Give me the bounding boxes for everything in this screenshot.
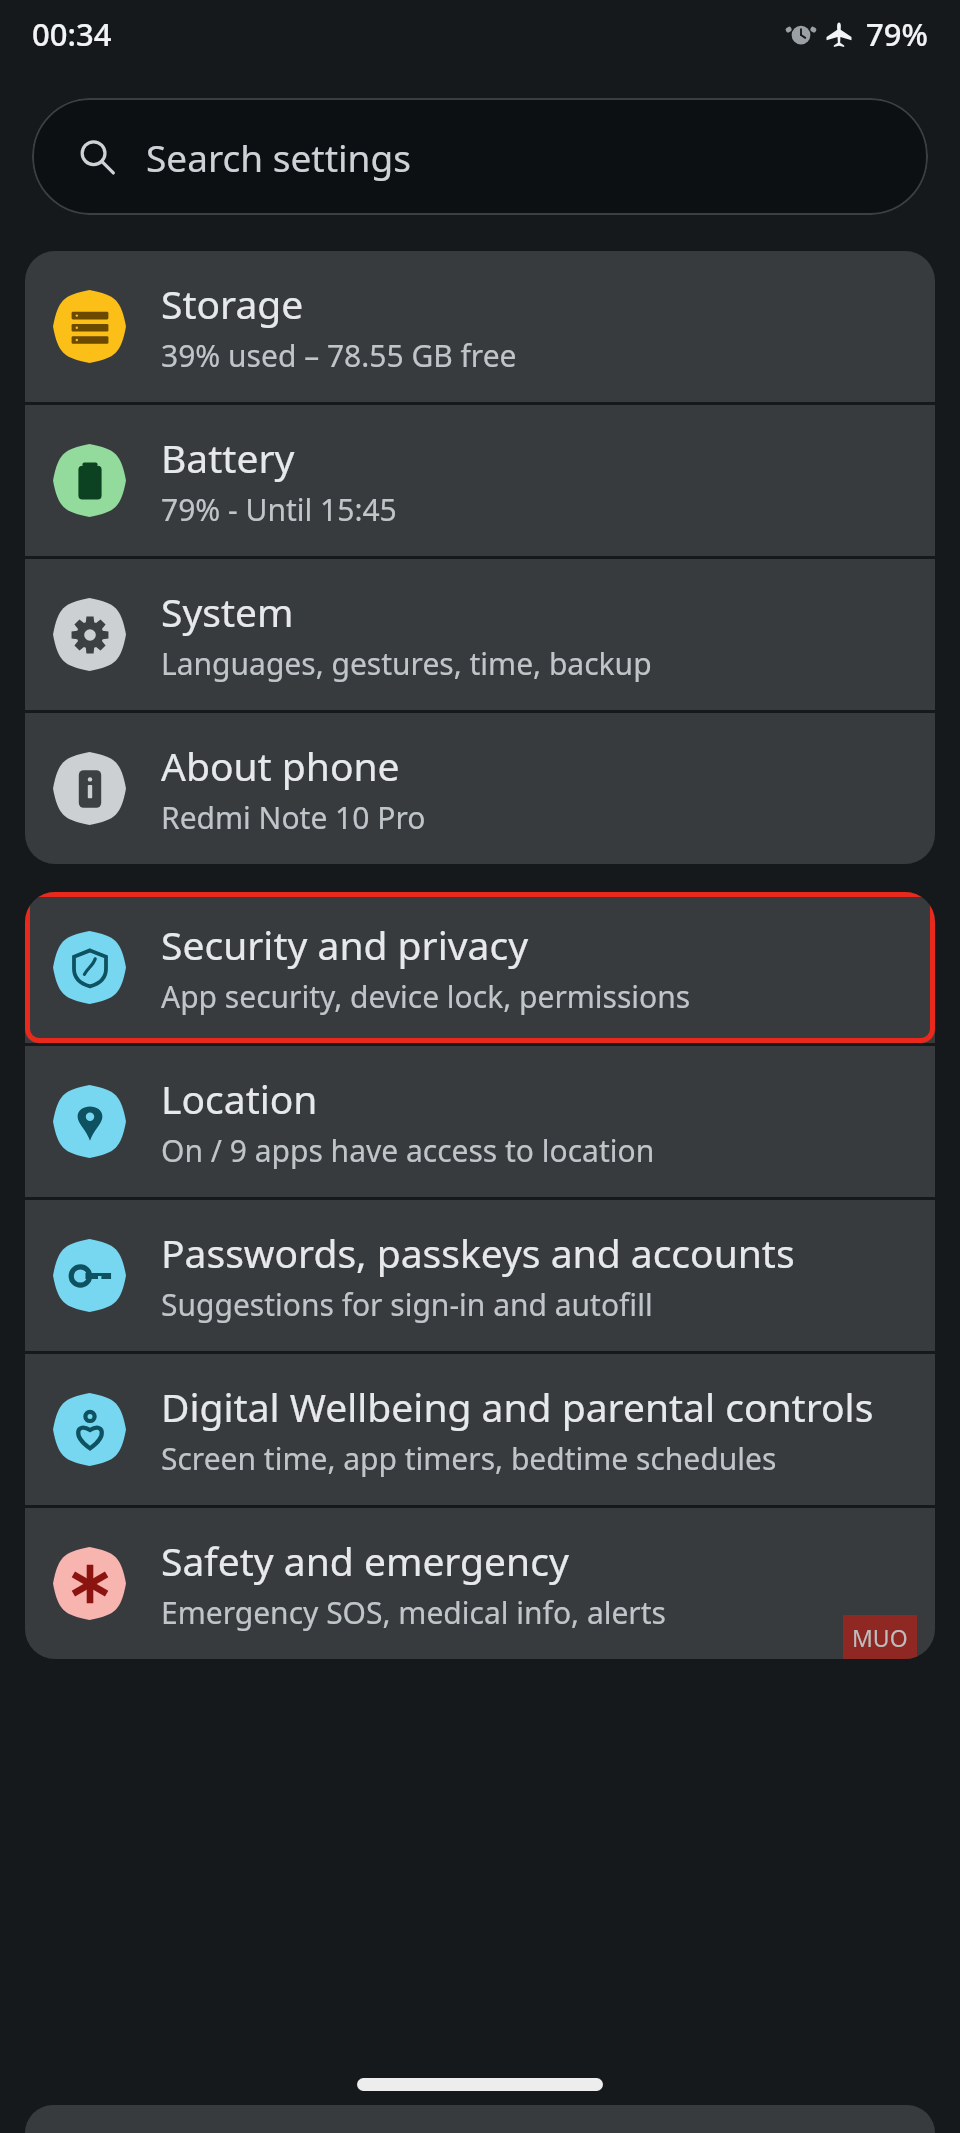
- staticText: App security, device lock, permissions: [161, 976, 691, 1017]
- staticText: Battery: [161, 431, 295, 484]
- staticText: 00:34: [32, 13, 112, 55]
- staticText: Passwords, passkeys and accounts: [161, 1226, 795, 1279]
- staticText: Emergency SOS, medical info, alerts: [161, 1592, 666, 1633]
- staticText: Storage: [161, 277, 304, 330]
- staticText: Suggestions for sign-in and autofill: [161, 1284, 653, 1325]
- staticText: Location: [161, 1072, 318, 1125]
- staticText: Safety and emergency: [161, 1534, 569, 1587]
- button[interactable]: Digital Wellbeing and parental controls: [25, 1354, 935, 1505]
- button[interactable]: Location: [25, 1046, 935, 1197]
- button[interactable]: Battery: [25, 405, 935, 556]
- button[interactable]: About phone: [25, 713, 935, 864]
- button[interactable]: Search settings: [32, 98, 928, 215]
- staticText: 79%: [866, 13, 928, 55]
- staticText: Security and privacy: [161, 918, 529, 971]
- button[interactable]: Passwords, passkeys and accounts: [25, 1200, 935, 1351]
- staticText: Redmi Note 10 Pro: [161, 797, 426, 838]
- staticText: Digital Wellbeing and parental controls: [161, 1380, 874, 1433]
- staticText: About phone: [161, 739, 400, 792]
- staticText: Languages, gestures, time, backup: [161, 643, 652, 684]
- staticText: System: [161, 585, 294, 638]
- staticText: 39% used – 78.55 GB free: [161, 335, 517, 376]
- staticText: 79% - Until 15:45: [161, 489, 397, 530]
- button[interactable]: System: [25, 559, 935, 710]
- button[interactable]: Storage: [25, 251, 935, 402]
- button[interactable]: Security and privacy: [25, 892, 935, 1043]
- staticText: Screen time, app timers, bedtime schedul…: [161, 1438, 777, 1479]
- button[interactable]: Safety and emergency: [25, 1508, 935, 1659]
- staticText: On / 9 apps have access to location: [161, 1130, 655, 1171]
- staticText: Search settings: [146, 132, 411, 182]
- staticText: MUO: [852, 1622, 908, 1653]
